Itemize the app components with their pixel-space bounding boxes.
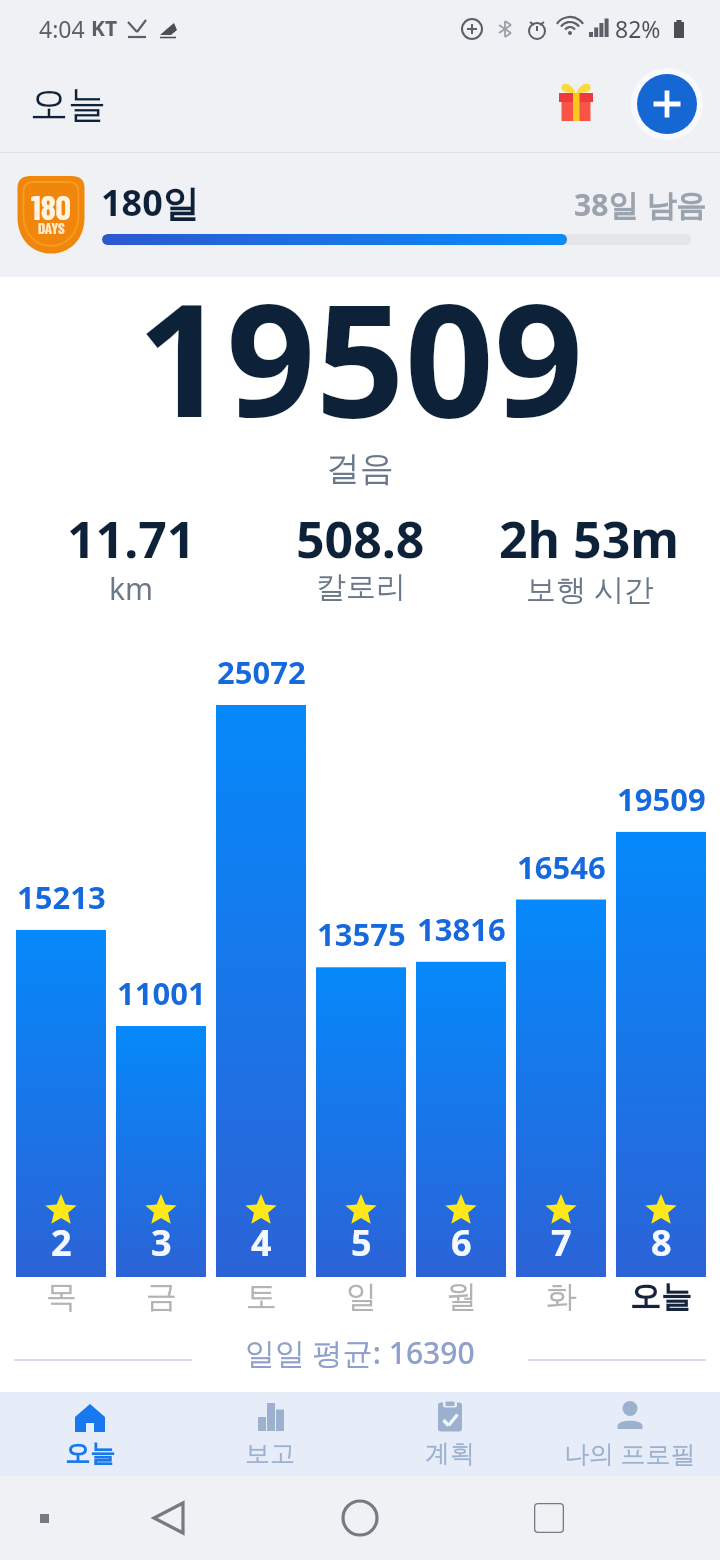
staticText: 목 <box>46 1277 77 1316</box>
staticText: 25072 <box>217 651 306 693</box>
staticText: 180일 <box>101 178 199 227</box>
staticText: KT <box>91 14 118 43</box>
staticText: 6 <box>451 1218 472 1267</box>
staticText: 월 <box>446 1277 477 1316</box>
staticText: 걸음 <box>326 447 394 490</box>
staticText: 오늘 <box>30 80 106 128</box>
staticText: 나의 프로필 <box>564 1436 696 1470</box>
button[interactable]: 나의 프로필 <box>540 1392 720 1476</box>
button[interactable]: 오늘 <box>0 1392 180 1476</box>
staticText: 19509 <box>137 250 584 462</box>
staticText: km <box>109 568 154 609</box>
staticText: 508.8 <box>296 505 425 573</box>
staticText: 19509 <box>617 778 706 820</box>
staticText: 7 <box>551 1218 572 1267</box>
staticText: 2 <box>51 1218 72 1267</box>
button[interactable]: Add <box>631 68 703 140</box>
staticText: 4 <box>251 1218 272 1267</box>
staticText: 보고 <box>245 1438 295 1469</box>
staticText: 보행 시간 <box>526 568 654 609</box>
staticText: 금 <box>146 1277 177 1316</box>
staticText: 180 <box>31 186 72 227</box>
staticText: DAYS <box>38 219 65 237</box>
staticText: 82% <box>615 13 661 44</box>
staticText: 11.71 <box>67 505 196 573</box>
staticText: 일일 평균: 16390 <box>245 1332 475 1373</box>
staticText: 4:04 <box>39 13 85 44</box>
button[interactable]: Gift <box>547 72 611 136</box>
staticText: 2h 53m <box>499 505 680 573</box>
staticText: 8 <box>651 1218 672 1267</box>
button[interactable]: 보고 <box>180 1392 360 1476</box>
staticText: 16546 <box>517 846 606 888</box>
staticText: 13575 <box>317 913 406 955</box>
staticText: 오늘 <box>65 1438 115 1469</box>
staticText: 계획 <box>425 1438 475 1469</box>
staticText: 11001 <box>117 972 206 1014</box>
staticText: 13816 <box>417 908 506 950</box>
staticText: 3 <box>151 1218 172 1267</box>
staticText: 38일 남음 <box>574 184 707 225</box>
button[interactable]: 계획 <box>360 1392 540 1476</box>
staticText: 일 <box>346 1277 377 1316</box>
staticText: 화 <box>546 1277 577 1316</box>
staticText: 칼로리 <box>316 568 406 606</box>
staticText: 15213 <box>17 876 106 918</box>
staticText: 토 <box>246 1277 277 1316</box>
staticText: 오늘 <box>630 1277 692 1316</box>
staticText: 5 <box>351 1218 372 1267</box>
